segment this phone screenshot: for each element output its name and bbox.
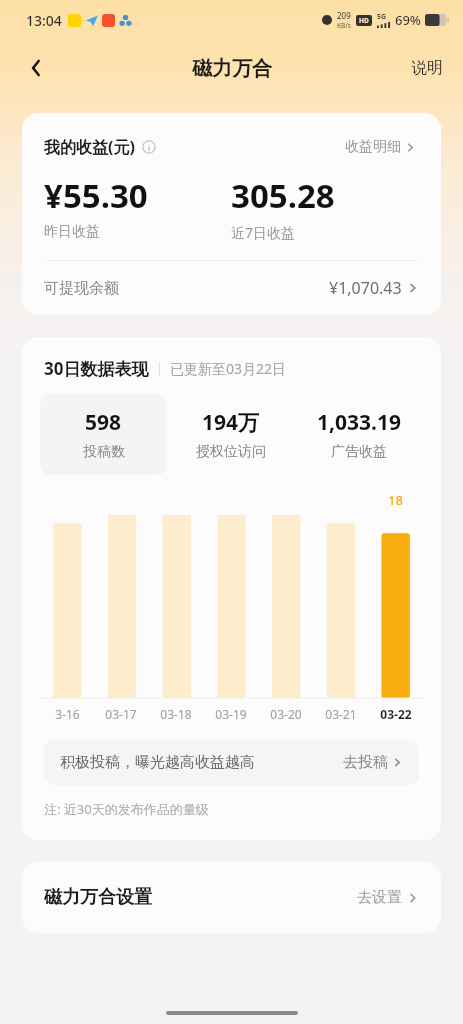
staticText: 注: 近30天的发布作品的量级 <box>44 800 209 818</box>
staticText: 可提现余额 <box>44 279 119 298</box>
button[interactable]: Back <box>14 46 58 90</box>
button[interactable]: 194万 <box>167 394 295 475</box>
staticText: 03-17 <box>105 706 137 722</box>
button[interactable]: 磁力万合设置 <box>22 862 441 933</box>
staticText: 69% <box>395 11 421 29</box>
staticText: 305.28 <box>231 173 335 218</box>
staticText: HD <box>359 16 369 25</box>
staticText: 03-22 <box>380 706 412 722</box>
staticText: 去投稿 <box>343 753 388 772</box>
staticText: 广告收益 <box>331 443 387 461</box>
button[interactable]: 收益明细 <box>342 135 419 159</box>
button[interactable]: 598 <box>40 394 167 475</box>
staticText: 收益明细 <box>345 138 401 156</box>
staticText: 209 <box>337 10 351 21</box>
staticText: 昨日收益 <box>44 223 100 241</box>
staticText: 说明 <box>411 58 443 78</box>
staticText: ¥1,070.43 <box>329 277 402 299</box>
staticText: 积极投稿，曝光越高收益越高 <box>60 753 255 772</box>
button[interactable]: 说明 <box>401 52 453 84</box>
staticText: 1,033.19 <box>317 408 401 437</box>
staticText: 03-21 <box>325 706 357 722</box>
button[interactable]: 1,033.19 <box>295 394 423 475</box>
staticText: 03-19 <box>215 706 247 722</box>
staticText: 去设置 <box>357 888 402 907</box>
staticText: 13:04 <box>26 11 62 30</box>
staticText: 5G <box>377 12 387 22</box>
staticText: 03-18 <box>160 706 192 722</box>
staticText: 18 <box>388 491 403 509</box>
staticText: 已更新至03月22日 <box>170 359 287 378</box>
staticText: 磁力万合设置 <box>44 886 152 909</box>
staticText: 194万 <box>202 408 260 437</box>
staticText: 3-16 <box>55 706 80 722</box>
staticText: 我的收益(元) <box>44 136 135 158</box>
staticText: 598 <box>85 408 122 437</box>
staticText: 磁力万合 <box>192 56 272 81</box>
staticText: ¥55.30 <box>44 173 148 218</box>
button[interactable]: 积极投稿，曝光越高收益越高 <box>44 740 419 785</box>
button[interactable]: 可提现余额 <box>44 261 419 315</box>
staticText: KB/s <box>337 21 351 30</box>
staticText: 授权位访问 <box>196 443 266 461</box>
staticText: 投稿数 <box>83 443 125 461</box>
other: Info <box>142 140 156 154</box>
staticText: 近7日收益 <box>231 223 296 242</box>
staticText: 03-20 <box>270 706 302 722</box>
staticText: 30日数据表现 <box>44 357 149 380</box>
